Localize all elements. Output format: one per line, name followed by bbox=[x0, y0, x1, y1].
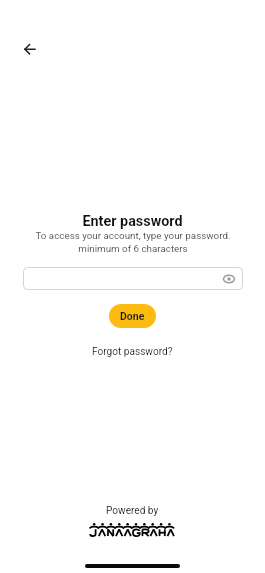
button[interactable]: Forgot password? bbox=[88, 344, 177, 360]
button[interactable]: Show password bbox=[222, 272, 236, 286]
button[interactable]: Show password bbox=[23, 267, 243, 290]
button[interactable]: Done bbox=[109, 304, 156, 328]
button[interactable]: Back bbox=[13, 37, 37, 61]
staticText: Forgot password? bbox=[92, 346, 173, 358]
staticText: Enter password bbox=[82, 213, 183, 230]
staticText: Powered by bbox=[106, 505, 159, 517]
staticText: To access your account, type your passwo… bbox=[35, 230, 231, 255]
staticText: Done bbox=[120, 310, 145, 322]
